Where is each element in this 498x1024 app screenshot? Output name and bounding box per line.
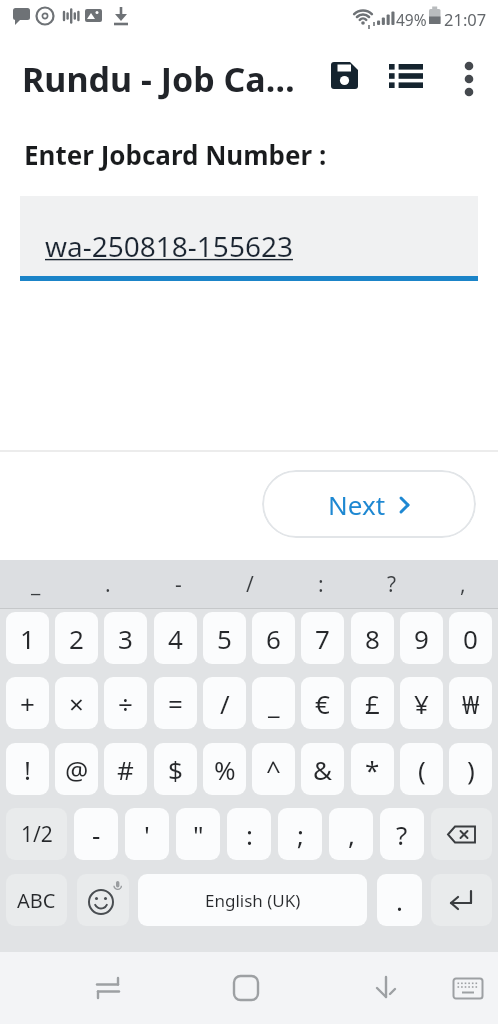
button[interactable]: '	[125, 808, 169, 860]
staticText: /	[246, 570, 254, 599]
staticText: ¥	[414, 686, 429, 721]
button[interactable]: 9	[400, 612, 443, 664]
button[interactable]	[78, 958, 138, 1018]
staticText: Enter Jobcard Number :	[24, 137, 327, 172]
staticText: :	[246, 817, 253, 852]
button[interactable]: _	[0, 560, 72, 608]
button[interactable]: /	[214, 560, 285, 608]
staticText: 0	[463, 621, 478, 656]
staticText: ,	[460, 570, 466, 599]
button[interactable]: Next	[262, 470, 476, 538]
button[interactable]	[431, 808, 492, 860]
button[interactable]	[383, 53, 429, 99]
button[interactable]: ABC	[6, 874, 67, 926]
staticText: 1	[20, 621, 35, 656]
button[interactable]: ;	[278, 808, 322, 860]
button[interactable]: @	[55, 743, 98, 795]
button[interactable]: 4	[154, 612, 197, 664]
button[interactable]: ?	[380, 808, 424, 860]
button[interactable]: /	[203, 677, 246, 729]
button[interactable]: )	[449, 743, 492, 795]
button[interactable]	[447, 56, 491, 102]
button[interactable]	[321, 52, 367, 98]
button[interactable]: =	[154, 677, 197, 729]
button[interactable]: ×	[55, 677, 98, 729]
button[interactable]: +	[6, 677, 49, 729]
button[interactable]: 0	[449, 612, 492, 664]
button[interactable]: 1/2	[6, 808, 67, 860]
button[interactable]: (	[400, 743, 443, 795]
staticText: 3	[118, 621, 133, 656]
button[interactable]: *	[351, 743, 394, 795]
staticText: 21:07	[444, 8, 487, 30]
staticText: &	[313, 752, 333, 787]
button[interactable]: 7	[301, 612, 344, 664]
staticText: ?	[396, 817, 408, 852]
staticText: 2	[69, 621, 84, 656]
button[interactable]: 6	[252, 612, 295, 664]
button[interactable]: :	[227, 808, 271, 860]
staticText: 8	[365, 621, 380, 656]
button[interactable]: :	[285, 560, 356, 608]
staticText: 9	[414, 621, 429, 656]
staticText: ?	[387, 570, 397, 599]
button[interactable]: €	[301, 677, 344, 729]
button[interactable]: 2	[55, 612, 98, 664]
button[interactable]	[77, 874, 129, 926]
button[interactable]: ,	[329, 808, 373, 860]
staticText: 7	[315, 621, 330, 656]
button[interactable]: 3	[104, 612, 147, 664]
staticText: /	[220, 686, 230, 721]
staticText: )	[467, 752, 475, 787]
button[interactable]: -	[74, 808, 118, 860]
button[interactable]: ÷	[104, 677, 147, 729]
staticText: %	[214, 752, 236, 787]
staticText: 49%	[396, 9, 427, 30]
button[interactable]: ?	[356, 560, 427, 608]
staticText: 4	[168, 621, 183, 656]
button[interactable]: £	[351, 677, 394, 729]
staticText: _	[31, 570, 41, 599]
button[interactable]: ₩	[449, 677, 492, 729]
button[interactable]	[440, 958, 496, 1018]
staticText: ,	[348, 817, 355, 852]
staticText: wa-250818-155623	[45, 227, 293, 265]
button[interactable]: wa-250818-155623	[20, 196, 478, 276]
button[interactable]: ¥	[400, 677, 443, 729]
staticText: :	[318, 570, 324, 599]
staticText: #	[117, 752, 134, 787]
staticText: -	[175, 570, 182, 599]
button[interactable]: 1	[6, 612, 49, 664]
button[interactable]: &	[301, 743, 344, 795]
button[interactable]	[357, 958, 417, 1018]
button[interactable]	[216, 958, 276, 1018]
staticText: -	[92, 817, 101, 852]
button[interactable]: $	[154, 743, 197, 795]
button[interactable]: .	[72, 560, 143, 608]
button[interactable]: ,	[427, 560, 498, 608]
button[interactable]: !	[6, 743, 49, 795]
staticText: Next	[328, 487, 386, 522]
button[interactable]: %	[203, 743, 246, 795]
staticText: $	[168, 752, 183, 787]
button[interactable]: 5	[203, 612, 246, 664]
staticText: 5	[217, 621, 232, 656]
staticText: Rundu - Job Ca…	[22, 56, 295, 102]
button[interactable]: 8	[351, 612, 394, 664]
staticText: ABC	[17, 887, 56, 914]
staticText: 6	[266, 621, 281, 656]
staticText: ×	[69, 686, 84, 721]
staticText: ^	[266, 752, 281, 787]
button[interactable]	[431, 874, 492, 926]
button[interactable]: .	[377, 874, 422, 926]
button[interactable]: ^	[252, 743, 295, 795]
staticText: _	[268, 686, 280, 721]
button[interactable]: "	[176, 808, 220, 860]
button[interactable]: #	[104, 743, 147, 795]
staticText: €	[315, 686, 330, 721]
button[interactable]: -	[143, 560, 214, 608]
button[interactable]: English (UK)	[138, 874, 367, 926]
staticText: +	[20, 686, 35, 721]
staticText: 1/2	[21, 820, 53, 849]
button[interactable]: _	[252, 677, 295, 729]
